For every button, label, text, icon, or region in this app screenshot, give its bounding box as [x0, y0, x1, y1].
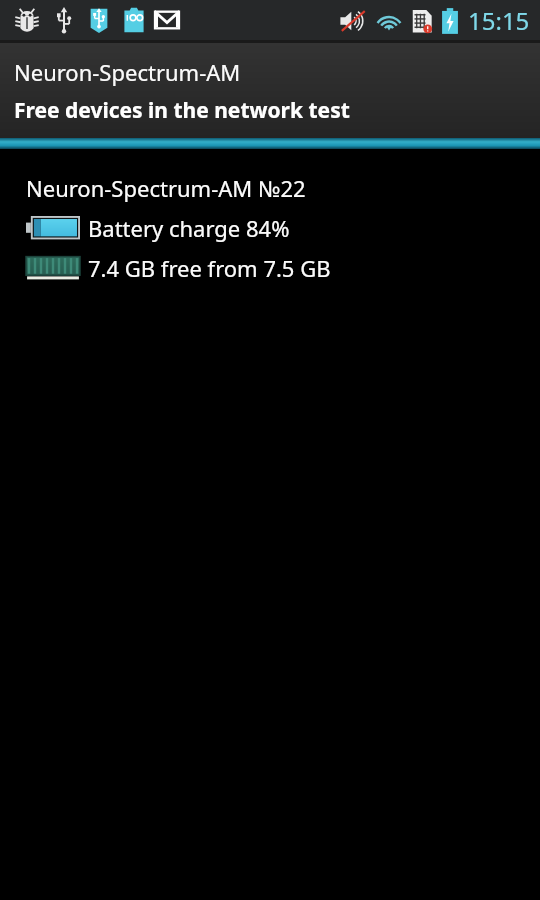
button[interactable]: Neuron-Spectrum-AM №22 — [0, 171, 540, 289]
staticText: Neuron-Spectrum-AM №22 — [26, 173, 306, 203]
staticText: 7.4 GB free from 7.5 GB — [88, 253, 331, 283]
staticText: 15:15 — [468, 4, 530, 37]
staticText: Free devices in the network test — [14, 96, 350, 125]
staticText: Neuron-Spectrum-AM — [14, 57, 241, 87]
staticText: Battery charge 84% — [88, 213, 290, 243]
